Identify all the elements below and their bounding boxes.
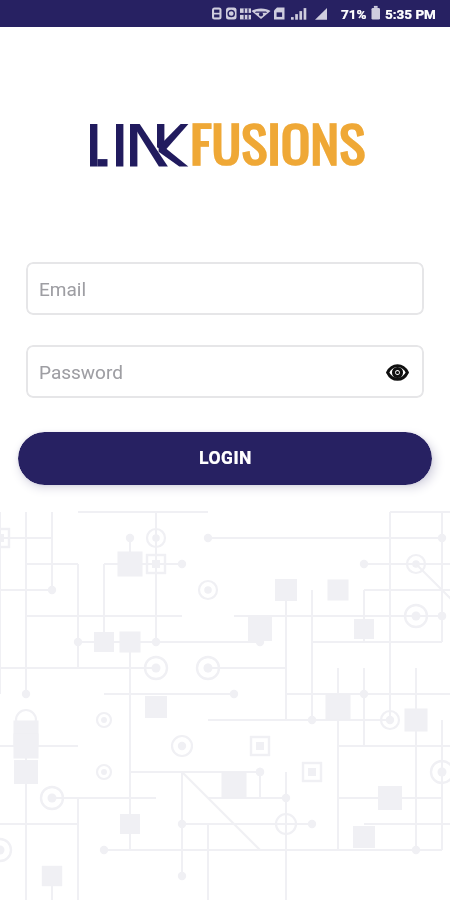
staticText: LOGIN [199,448,252,469]
button[interactable]: Email [26,262,424,315]
button[interactable]: LOGIN [18,432,432,485]
staticText: FUSIONS [190,104,365,180]
button[interactable]: Show password [382,357,412,387]
staticText: Password [39,361,123,383]
staticText: 5:35 PM [385,6,436,22]
button[interactable]: Password [26,345,424,398]
staticText: Email [39,278,87,300]
staticText: 71% [341,6,367,22]
